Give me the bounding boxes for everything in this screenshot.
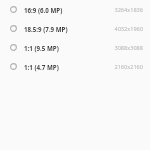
staticText: 4032x1960 — [114, 25, 143, 33]
button[interactable]: 16:9 (6.0 MP) — [0, 0, 150, 19]
button[interactable]: 1:1 (4.7 MP) — [0, 57, 150, 76]
staticText: 3264x1836 — [114, 6, 143, 14]
staticText: 2160x2160 — [114, 63, 143, 71]
staticText: 16:9 (6.0 MP) — [24, 6, 63, 14]
button[interactable]: 18.5:9 (7.9 MP) — [0, 19, 150, 38]
staticText: 1:1 (4.7 MP) — [24, 63, 59, 71]
staticText: 1:1 (9.5 MP) — [24, 44, 59, 52]
staticText: 18.5:9 (7.9 MP) — [24, 25, 68, 33]
staticText: 3088x3088 — [114, 44, 143, 52]
button[interactable]: 1:1 (9.5 MP) — [0, 38, 150, 57]
other: Picture size options — [0, 0, 150, 150]
